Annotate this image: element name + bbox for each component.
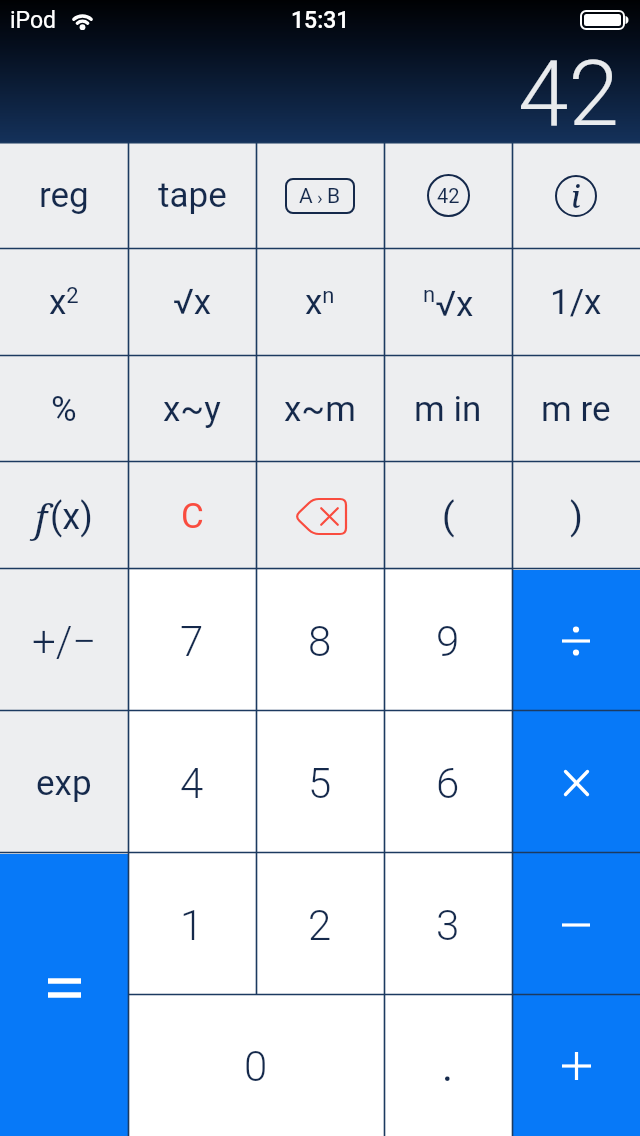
staticText: f [35,491,48,543]
button[interactable]: 8 [256,570,384,712]
staticText: (x) [50,496,93,538]
button[interactable]: x~m [256,356,384,463]
staticText: reg [39,175,89,216]
button[interactable]: i [512,142,640,249]
button[interactable] [0,854,128,1136]
button[interactable]: 7 [128,570,256,712]
staticText: xn [305,282,335,323]
staticText: 7 [180,617,204,666]
button[interactable]: 2 [256,854,384,996]
button[interactable]: n√x [384,249,512,356]
staticText: › [317,186,323,208]
staticText: 42 [437,184,460,207]
staticText: C [181,496,204,537]
button[interactable]: C [128,463,256,570]
button[interactable]: % [0,356,128,463]
staticText: √x [173,282,212,323]
staticText: 0 [244,1042,268,1091]
staticText: n√x [423,282,474,324]
button[interactable]: 9 [384,570,512,712]
button[interactable]: xn [256,249,384,356]
button[interactable]: . [384,996,512,1136]
button[interactable] [512,712,640,854]
button[interactable]: m in [384,356,512,463]
staticText: iPod [10,7,57,34]
button[interactable]: 3 [384,854,512,996]
button[interactable]: A [256,142,384,249]
staticText: % [51,389,77,430]
button[interactable]: tape [128,142,256,249]
button[interactable]: ( [384,463,512,570]
staticText: +/− [32,617,97,666]
button[interactable] [512,854,640,996]
staticText: m re [541,389,611,430]
staticText: i [571,176,581,217]
button[interactable]: reg [0,142,128,249]
button[interactable]: 4 [128,712,256,854]
staticText: 5 [308,759,332,808]
staticText: B [327,184,341,209]
button[interactable] [512,570,640,712]
staticText: 4 [180,759,204,808]
staticText: x2 [49,282,79,323]
staticText: 1/x [550,282,602,323]
staticText: 9 [436,617,460,666]
staticText: A [299,184,313,209]
button[interactable]: f [0,463,128,570]
staticText: 1 [180,901,204,950]
staticText: 42 [518,41,619,142]
button[interactable]: 1/x [512,249,640,356]
staticText: 2 [308,901,332,950]
staticText: tape [158,175,227,216]
staticText: x~m [284,389,356,430]
staticText: 3 [436,901,460,950]
button[interactable]: ) [512,463,640,570]
button[interactable] [256,463,384,570]
staticText: ( [442,495,455,538]
staticText: 6 [436,759,460,808]
button[interactable]: 1 [128,854,256,996]
staticText: . [442,1042,454,1091]
button[interactable]: exp [0,712,128,854]
staticText: exp [36,763,92,804]
staticText: 15:31 [291,7,350,34]
button[interactable]: m re [512,356,640,463]
button[interactable]: √x [128,249,256,356]
staticText: ) [570,495,583,538]
staticText: 8 [308,617,332,666]
button[interactable]: +/− [0,570,128,712]
staticText: x~y [163,389,221,430]
button[interactable]: x~y [128,356,256,463]
button[interactable]: 0 [128,996,384,1136]
staticText: m in [414,389,482,430]
button[interactable]: 5 [256,712,384,854]
button[interactable]: 6 [384,712,512,854]
button[interactable]: x2 [0,249,128,356]
button[interactable]: 42 [384,142,512,249]
button[interactable] [512,996,640,1136]
